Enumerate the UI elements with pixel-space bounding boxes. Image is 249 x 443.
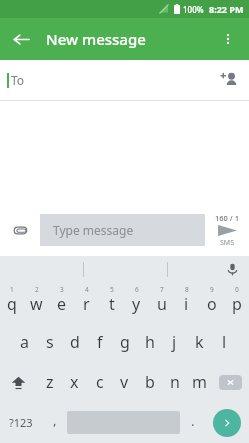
button[interactable]: ,: [42, 402, 67, 443]
staticText: h: [145, 331, 155, 353]
staticText: c: [96, 371, 104, 393]
staticText: 7: [160, 285, 164, 294]
staticText: w: [30, 293, 43, 315]
button[interactable]: 4: [74, 282, 99, 322]
staticText: m: [192, 371, 207, 393]
button[interactable]: Enter: [205, 402, 249, 443]
button[interactable]: Type message: [40, 214, 205, 246]
staticText: 2: [35, 285, 39, 294]
staticText: x: [70, 371, 79, 393]
staticText: j: [172, 331, 177, 353]
button[interactable]: l: [212, 322, 237, 362]
button[interactable]: a: [12, 322, 37, 362]
staticText: 6: [135, 285, 139, 294]
button[interactable]: Add contact: [209, 60, 249, 100]
button[interactable]: 0: [224, 282, 249, 322]
button[interactable]: Send: [205, 213, 249, 248]
staticText: SMS: [220, 238, 235, 248]
staticText: b: [145, 371, 155, 393]
button[interactable]: More options: [207, 18, 249, 60]
button[interactable]: Shift: [0, 362, 37, 402]
staticText: g: [120, 331, 130, 353]
staticText: z: [46, 371, 54, 393]
button[interactable]: x: [62, 362, 87, 402]
staticText: Type message: [53, 222, 134, 238]
staticText: a: [20, 331, 29, 353]
button[interactable]: .: [180, 402, 205, 443]
staticText: v: [120, 371, 129, 393]
button[interactable]: j: [162, 322, 187, 362]
button[interactable]: f: [87, 322, 112, 362]
staticText: ,: [53, 411, 57, 429]
button[interactable]: v: [112, 362, 137, 402]
button[interactable]: Attach: [0, 210, 40, 250]
staticText: 8: [185, 285, 189, 294]
button[interactable]: k: [187, 322, 212, 362]
staticText: d: [70, 331, 80, 353]
button[interactable]: b: [137, 362, 162, 402]
button[interactable]: 1: [0, 282, 24, 322]
staticText: New message: [46, 29, 146, 49]
staticText: 3: [60, 285, 64, 294]
staticText: t: [109, 293, 115, 315]
staticText: u: [157, 293, 167, 315]
button[interactable]: 5: [99, 282, 124, 322]
staticText: p: [232, 293, 242, 315]
button[interactable]: To: [0, 60, 249, 100]
button[interactable]: h: [137, 322, 162, 362]
button[interactable]: 8: [174, 282, 199, 322]
staticText: 9: [210, 285, 214, 294]
staticText: o: [207, 293, 217, 315]
staticText: 0: [235, 285, 239, 294]
staticText: r: [83, 293, 90, 315]
button[interactable]: n: [162, 362, 187, 402]
staticText: i: [184, 293, 189, 315]
button[interactable]: Back: [0, 18, 42, 60]
staticText: 100%: [183, 4, 204, 15]
staticText: To: [11, 72, 25, 88]
staticText: k: [195, 331, 204, 353]
staticText: f: [97, 331, 103, 353]
button[interactable]: m: [187, 362, 212, 402]
button[interactable]: Voice input: [219, 256, 245, 282]
button[interactable]: 6: [124, 282, 149, 322]
staticText: q: [7, 293, 17, 315]
staticText: n: [170, 371, 180, 393]
staticText: .: [191, 412, 195, 430]
staticText: 160 / 1: [215, 213, 239, 223]
button[interactable]: g: [112, 322, 137, 362]
button[interactable]: 2: [24, 282, 49, 322]
button[interactable]: 7: [149, 282, 174, 322]
staticText: 5: [110, 285, 114, 294]
staticText: e: [57, 293, 67, 315]
button[interactable]: c: [87, 362, 112, 402]
staticText: 1: [10, 285, 14, 294]
button[interactable]: Backspace: [212, 362, 249, 402]
staticText: ?123: [9, 415, 33, 430]
button[interactable]: ?123: [0, 402, 42, 443]
staticText: 8:22 PM: [209, 3, 244, 15]
button[interactable]: d: [62, 322, 87, 362]
button[interactable]: s: [37, 322, 62, 362]
button[interactable]: z: [37, 362, 62, 402]
staticText: 4: [85, 285, 89, 294]
staticText: l: [222, 331, 227, 353]
button[interactable]: 3: [49, 282, 74, 322]
staticText: s: [46, 331, 54, 353]
staticText: y: [132, 293, 141, 315]
button[interactable]: 9: [199, 282, 224, 322]
